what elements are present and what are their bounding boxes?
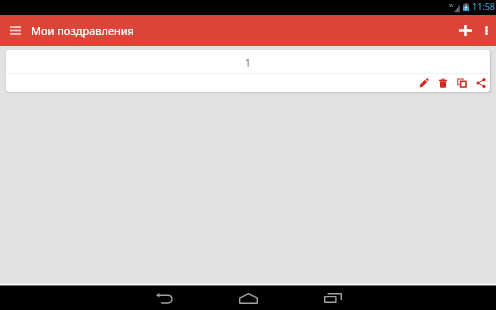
button[interactable]: Navigation menu — [0, 15, 31, 46]
button[interactable]: Home — [224, 286, 273, 310]
button[interactable]: More options — [477, 15, 496, 46]
button[interactable]: Edit — [416, 75, 431, 91]
button[interactable]: 1 — [6, 50, 490, 92]
staticText: Мои поздравления — [31, 23, 134, 38]
button[interactable]: Share — [473, 75, 488, 91]
button[interactable]: Copy — [454, 75, 469, 91]
staticText: 1 — [245, 56, 251, 70]
button[interactable]: Recent apps — [308, 286, 357, 310]
button[interactable]: Back — [140, 286, 189, 310]
button[interactable]: Add — [450, 15, 481, 46]
staticText: 11:58 — [472, 0, 496, 12]
button[interactable]: Delete — [435, 75, 450, 91]
